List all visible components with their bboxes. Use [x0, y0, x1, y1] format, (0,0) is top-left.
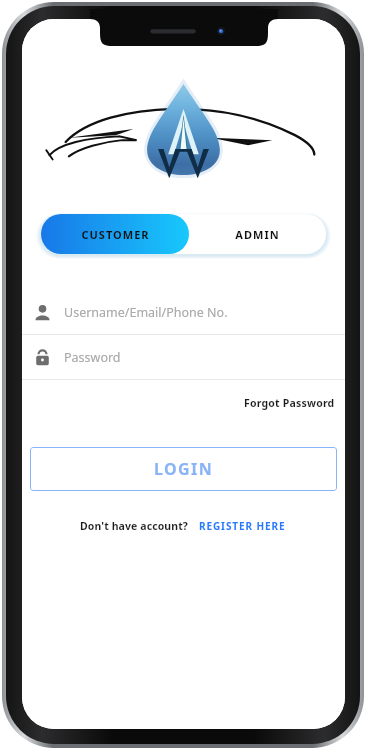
button[interactable]: Forgot Password: [234, 392, 345, 414]
staticText: Forgot Password: [244, 396, 335, 410]
button[interactable]: ADMIN: [189, 214, 326, 254]
staticText: REGISTER HERE: [199, 519, 286, 533]
staticText: ADMIN: [235, 227, 280, 242]
staticText: LOGIN: [154, 458, 214, 480]
button[interactable]: LOGIN: [30, 447, 337, 491]
staticText: Password: [64, 349, 121, 366]
staticText: Don't have account?: [80, 519, 188, 533]
button[interactable]: REGISTER HERE: [197, 516, 288, 536]
staticText: CUSTOMER: [81, 227, 150, 242]
button[interactable]: Password: [22, 335, 345, 379]
button[interactable]: CUSTOMER: [41, 214, 189, 254]
button[interactable]: Username/Email/Phone No.: [22, 290, 345, 334]
staticText: Username/Email/Phone No.: [64, 304, 228, 321]
